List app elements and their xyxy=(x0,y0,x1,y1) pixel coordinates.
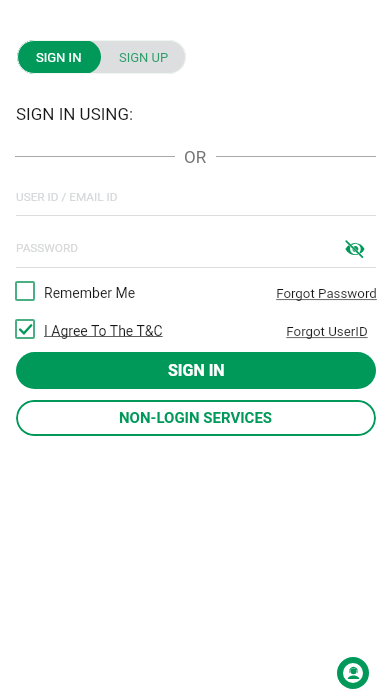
button[interactable]: I Agree To The T&C xyxy=(15,319,163,339)
staticText: SIGN IN xyxy=(168,361,225,380)
staticText: Forgot UserID xyxy=(286,324,368,340)
button[interactable]: SIGN IN xyxy=(16,352,376,389)
staticText: SIGN IN USING: xyxy=(16,104,134,124)
button[interactable]: Remember Me xyxy=(15,281,136,301)
staticText: NON-LOGIN SERVICES xyxy=(119,409,273,427)
button[interactable]: Customer support xyxy=(337,657,369,689)
button[interactable]: NON-LOGIN SERVICES xyxy=(16,400,376,436)
staticText: Forgot Password xyxy=(276,286,377,302)
staticText: SIGN IN xyxy=(36,50,82,65)
button[interactable]: Forgot UserID xyxy=(266,319,387,339)
staticText: PASSWORD xyxy=(16,241,78,255)
button[interactable]: SIGN UP xyxy=(101,40,186,74)
staticText: USER ID / EMAIL ID xyxy=(16,190,118,204)
button[interactable]: SIGN IN xyxy=(17,40,101,74)
staticText: Remember Me xyxy=(44,285,136,301)
staticText: OR xyxy=(184,147,207,165)
staticText: SIGN UP xyxy=(119,50,169,65)
button[interactable]: Show password xyxy=(342,236,368,262)
button[interactable]: Forgot Password xyxy=(266,281,387,301)
staticText: I Agree To The T&C xyxy=(44,323,163,339)
